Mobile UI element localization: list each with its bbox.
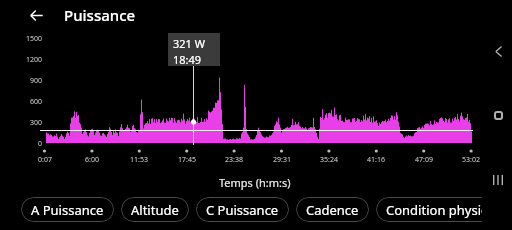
button[interactable]: Recent apps [483, 165, 512, 195]
staticText: 17:45 [178, 155, 196, 165]
staticText: 6:00 [85, 155, 99, 165]
staticText: 11:53 [130, 155, 148, 165]
staticText: 321 W [173, 36, 205, 51]
staticText: 53:02 [462, 155, 480, 165]
button[interactable]: Back [483, 36, 512, 66]
staticText: 1200 [0, 55, 42, 65]
staticText: 41:16 [367, 155, 385, 165]
staticText: 18:49 [173, 52, 202, 66]
staticText: Condition physique [386, 201, 482, 219]
staticText: 23:38 [225, 155, 243, 165]
staticText: Altitude [131, 201, 179, 219]
staticText: 300 [0, 118, 42, 128]
staticText: Temps (h:m:s) [219, 175, 291, 190]
button[interactable]: C Puissance [196, 197, 289, 222]
staticText: 35:24 [320, 155, 338, 165]
staticText: A Puissance [31, 201, 104, 219]
staticText: 600 [0, 97, 42, 107]
staticText: 29:31 [273, 155, 291, 165]
button[interactable]: Cadence [296, 197, 369, 222]
button[interactable]: Altitude [121, 197, 189, 222]
staticText: 0 [0, 139, 42, 149]
button[interactable]: A Puissance [21, 197, 114, 222]
staticText: 47:09 [415, 155, 433, 165]
staticText: 1500 [0, 34, 42, 44]
staticText: C Puissance [206, 201, 279, 219]
button[interactable]: Back [21, 0, 51, 30]
staticText: 0:07 [38, 155, 52, 165]
button[interactable]: Condition physique [376, 197, 482, 222]
staticText: 900 [0, 76, 42, 86]
button[interactable]: Home [483, 100, 512, 130]
staticText: Puissance [64, 5, 136, 25]
staticText: Cadence [306, 201, 359, 219]
